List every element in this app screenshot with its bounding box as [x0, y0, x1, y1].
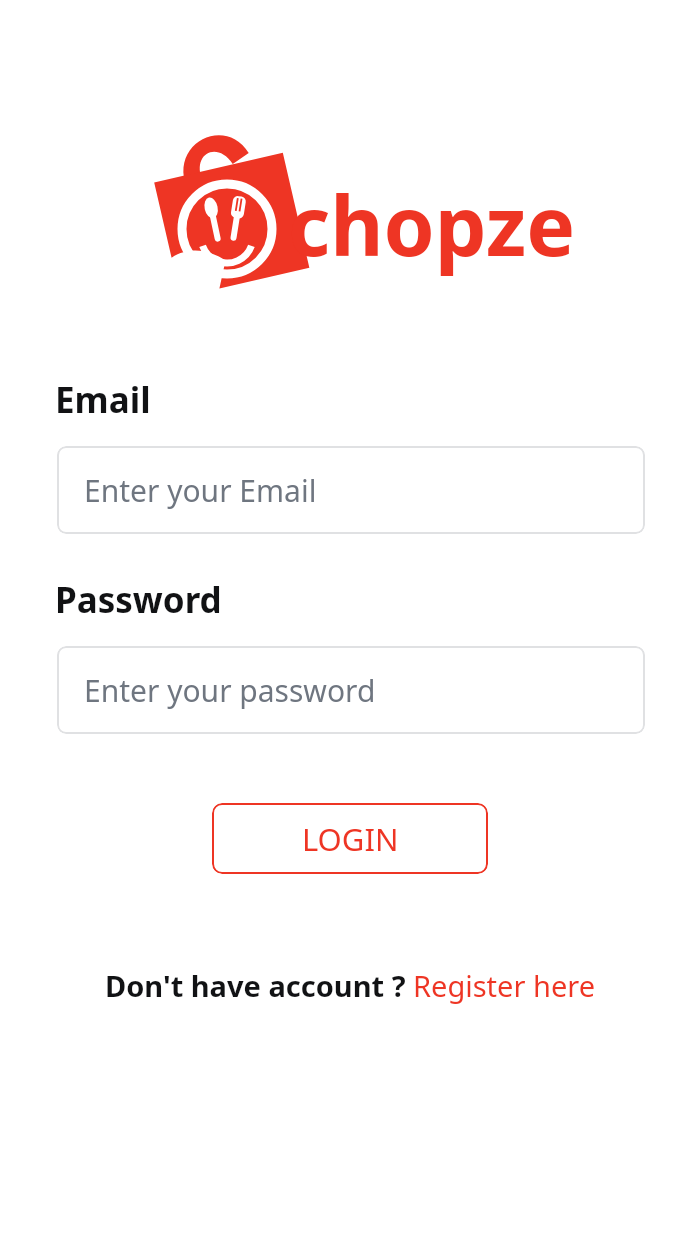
staticText: Password: [55, 576, 222, 624]
staticText: Don't have account ? Register here: [105, 966, 595, 1005]
button[interactable]: Don't have account ? Register here: [105, 966, 595, 1005]
staticText: Enter your password: [84, 670, 376, 711]
staticText: chopze: [288, 168, 576, 280]
staticText: LOGIN: [302, 818, 399, 860]
button[interactable]: Enter your Email: [57, 446, 645, 534]
staticText: Enter your Email: [84, 470, 317, 511]
button[interactable]: Enter your password: [57, 646, 645, 734]
button[interactable]: LOGIN: [212, 803, 488, 874]
staticText: Email: [55, 376, 151, 424]
